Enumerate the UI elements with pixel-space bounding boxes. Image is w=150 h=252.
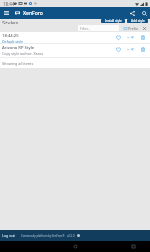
button[interactable]: Install style: [101, 19, 125, 23]
button[interactable]: Copy style: [137, 32, 148, 42]
button[interactable]: Style properties: [113, 32, 124, 42]
button[interactable]: Options: [124, 32, 137, 42]
staticText: Copy style author: Xxxxx: [2, 51, 44, 56]
button[interactable]: Prefix: [124, 26, 138, 31]
staticText: Filter...: [80, 26, 91, 31]
staticText: Default style: [2, 39, 24, 43]
staticText: v2.2.0: [67, 234, 75, 238]
button[interactable]: Menu: [0, 7, 12, 19]
staticText: Community platform by XenForo®: [21, 234, 65, 238]
button[interactable]: Filter...: [78, 25, 119, 31]
button[interactable]: Forums: [12, 7, 23, 19]
button[interactable]: Copy style: [137, 44, 148, 54]
staticText: Styles: [2, 19, 19, 24]
button[interactable]: Arizona RP Style: [0, 44, 150, 57]
button[interactable]: Clear filter: [141, 25, 147, 31]
staticText: Prefix: [128, 26, 138, 31]
button[interactable]: Share: [126, 7, 138, 19]
staticText: Log out: [2, 233, 15, 238]
staticText: 18:44:25: [2, 33, 19, 39]
button[interactable]: Log out: [2, 231, 15, 240]
staticText: 18:44: [3, 1, 15, 7]
button[interactable]: Options: [124, 44, 137, 54]
staticText: XenForo: [23, 10, 43, 17]
button[interactable]: Community platform by XenForo®: [21, 234, 65, 238]
staticText: Arizona RP Style: [2, 45, 35, 51]
staticText: Install style: [105, 19, 122, 23]
button[interactable]: Recents: [129, 242, 138, 251]
button[interactable]: Search: [138, 7, 150, 19]
button[interactable]: Add style: [127, 19, 148, 23]
staticText: Showing all items: [2, 61, 34, 66]
button[interactable]: Home: [71, 242, 80, 251]
button[interactable]: Style properties: [113, 44, 124, 54]
button[interactable]: 18:44:25: [0, 32, 150, 43]
staticText: Add style: [131, 19, 145, 23]
